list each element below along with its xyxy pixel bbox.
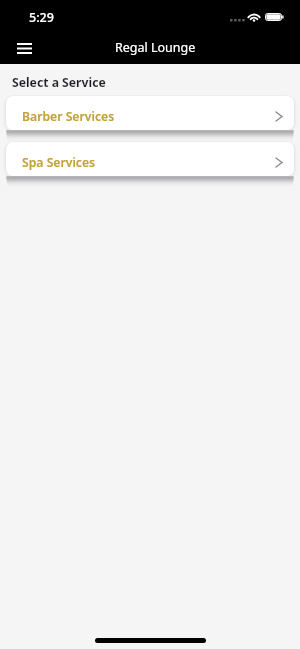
button[interactable]: Spa Services (6, 142, 294, 176)
staticText: 5:29 (29, 9, 54, 26)
staticText: Spa Services (22, 154, 96, 171)
button[interactable]: Open navigation menu (7, 30, 39, 62)
staticText: Barber Services (22, 108, 115, 125)
staticText: Select a Service (12, 74, 106, 91)
button[interactable]: Barber Services (6, 96, 294, 130)
staticText: Regal Lounge (115, 39, 196, 56)
